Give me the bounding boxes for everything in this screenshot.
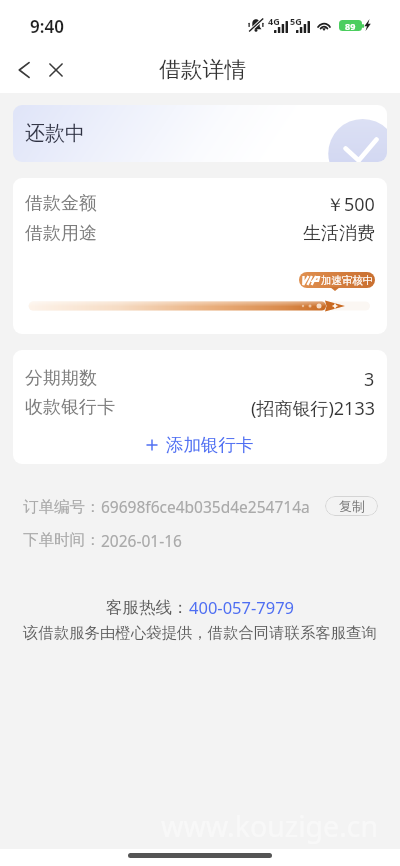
staticText: 借款用途 bbox=[25, 222, 97, 244]
staticText: 9:40 bbox=[30, 15, 64, 38]
staticText: 加速审核中 bbox=[321, 274, 374, 287]
staticText: 该借款服务由橙心袋提供，借款合同请联系客服查询 bbox=[23, 623, 377, 642]
button[interactable]: 400-057-7979 bbox=[189, 596, 295, 618]
button[interactable]: 添加银行卡 bbox=[136, 432, 264, 458]
staticText: 生活消费 bbox=[303, 222, 375, 244]
staticText: 复制 bbox=[339, 498, 365, 514]
staticText: 4G bbox=[268, 15, 280, 27]
button[interactable]: Close bbox=[39, 53, 72, 86]
staticText: 还款中 bbox=[25, 121, 85, 146]
staticText: 借款详情 bbox=[159, 56, 247, 83]
button[interactable]: 复制 bbox=[325, 496, 378, 516]
staticText: 5G bbox=[290, 15, 302, 27]
staticText: 客服热线： bbox=[106, 597, 189, 618]
staticText: (招商银行)2133 bbox=[251, 396, 375, 418]
staticText: 2026-01-16 bbox=[101, 530, 182, 551]
staticText: 分期期数 bbox=[25, 367, 97, 389]
staticText: 收款银行卡 bbox=[25, 396, 115, 418]
staticText: ￥500 bbox=[326, 192, 375, 214]
staticText: 订单编号： bbox=[23, 497, 101, 517]
staticText: 69698f6ce4b035d4e254714a bbox=[101, 496, 310, 517]
staticText: 400-057-7979 bbox=[189, 596, 295, 618]
staticText: 3 bbox=[364, 367, 375, 389]
button[interactable]: Back bbox=[7, 53, 40, 86]
staticText: 下单时间： bbox=[23, 530, 101, 550]
staticText: 添加银行卡 bbox=[166, 434, 254, 456]
staticText: 89 bbox=[345, 20, 356, 31]
staticText: 借款金额 bbox=[25, 192, 97, 214]
